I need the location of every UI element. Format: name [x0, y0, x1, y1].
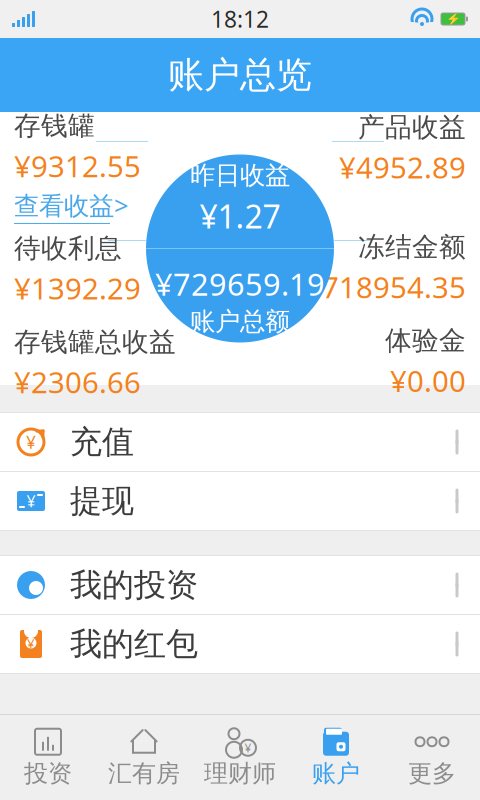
staticText: 查看收益>: [14, 188, 128, 222]
staticText: ¥: [26, 430, 36, 453]
staticText: ¥4952.89: [339, 148, 466, 187]
staticText: ¥1392.29: [14, 269, 141, 308]
staticText: 冻结金额: [358, 231, 466, 263]
staticText: ¥0.00: [390, 361, 466, 400]
staticText: 待收利息: [14, 232, 122, 265]
staticText: 体验金: [385, 324, 466, 357]
staticText: 我的投资: [70, 565, 198, 605]
staticText: ¥9312.55: [14, 146, 141, 185]
button[interactable]: 更多: [384, 715, 480, 800]
staticText: 18:12: [211, 4, 269, 34]
button[interactable]: 我的投资: [0, 556, 480, 615]
staticText: ¥729659.19: [155, 263, 325, 304]
staticText: 汇有房: [108, 759, 180, 788]
staticText: 充值: [70, 422, 134, 462]
staticText: 存钱罐总收益: [14, 326, 176, 358]
staticText: 理财师: [204, 759, 276, 788]
button[interactable]: 查看收益>: [14, 188, 128, 224]
staticText: 我的红包: [70, 624, 198, 664]
staticText: ¥: [27, 634, 35, 652]
button[interactable]: 汇有房: [96, 715, 192, 800]
staticText: 提现: [70, 481, 134, 521]
staticText: ¥2306.66: [14, 362, 141, 401]
staticText: 存钱罐: [14, 110, 95, 142]
staticText: ¥: [244, 740, 251, 756]
staticText: 账户总额: [190, 306, 290, 337]
staticText: 账户总览: [168, 53, 312, 97]
button[interactable]: ¥: [0, 615, 480, 673]
staticText: 投资: [24, 759, 72, 788]
staticText: ¥1.27: [199, 195, 280, 237]
staticText: 更多: [408, 759, 456, 788]
staticText: ⚡: [445, 12, 460, 26]
staticText: 产品收益: [358, 111, 466, 144]
button[interactable]: 投资: [0, 715, 96, 800]
button[interactable]: ¥: [0, 472, 480, 530]
staticText: ¥718954.35: [305, 267, 466, 306]
button[interactable]: 账户: [288, 715, 384, 800]
button[interactable]: ¥: [0, 413, 480, 472]
staticText: 昨日收益: [190, 160, 290, 191]
staticText: ¥: [26, 490, 35, 512]
staticText: 账户: [312, 759, 360, 788]
button[interactable]: ¥: [192, 715, 288, 800]
